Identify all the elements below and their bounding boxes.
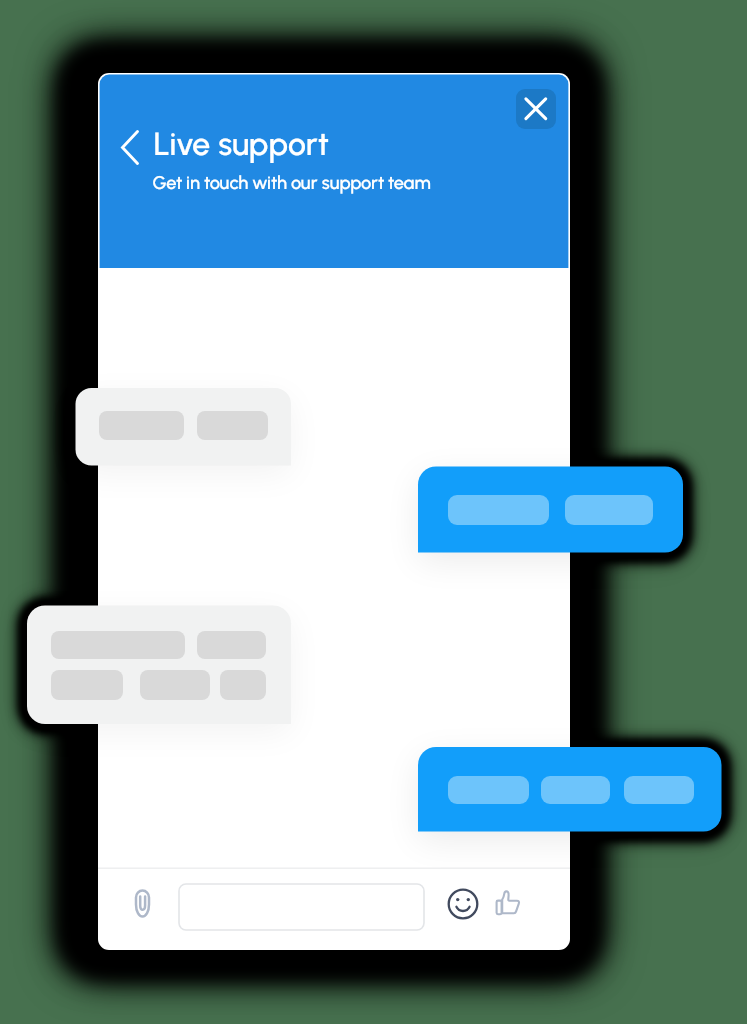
button[interactable]: Back [112, 125, 152, 169]
button[interactable]: Emoji [443, 884, 483, 924]
button[interactable]: Attach file [124, 882, 162, 926]
button[interactable]: Message [179, 884, 424, 930]
button[interactable]: Close [516, 89, 556, 129]
button[interactable]: Like [492, 884, 532, 924]
